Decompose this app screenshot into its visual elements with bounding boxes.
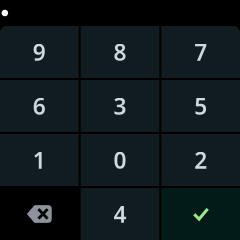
staticText: 2 bbox=[194, 145, 207, 175]
staticText: 1 bbox=[33, 145, 46, 175]
staticText: 6 bbox=[33, 91, 46, 121]
staticText: 0 bbox=[113, 145, 126, 175]
staticText: 3 bbox=[113, 91, 126, 121]
staticText: 4 bbox=[113, 199, 126, 229]
button[interactable]: 1 bbox=[0, 134, 79, 186]
button[interactable]: 2 bbox=[161, 134, 240, 186]
button[interactable]: 0 bbox=[81, 134, 159, 186]
button[interactable]: 9 bbox=[0, 26, 79, 78]
staticText: 8 bbox=[113, 37, 126, 67]
staticText: 5 bbox=[194, 91, 207, 121]
button[interactable]: Confirm bbox=[161, 188, 240, 240]
button[interactable]: Delete bbox=[0, 188, 79, 240]
button[interactable]: 6 bbox=[0, 80, 79, 132]
button[interactable]: 8 bbox=[81, 26, 159, 78]
staticText: 7 bbox=[194, 37, 207, 67]
button[interactable]: 3 bbox=[81, 80, 159, 132]
button[interactable]: 4 bbox=[81, 188, 159, 240]
button[interactable]: 5 bbox=[161, 80, 240, 132]
button[interactable]: 7 bbox=[161, 26, 240, 78]
staticText: 9 bbox=[33, 37, 46, 67]
